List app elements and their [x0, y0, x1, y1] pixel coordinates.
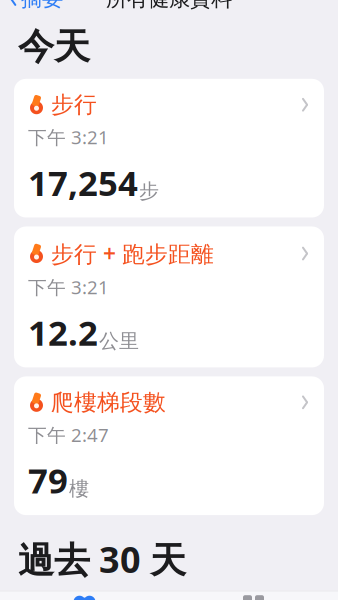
- staticText: 步: [139, 179, 159, 203]
- button[interactable]: 摘要: [0, 589, 169, 600]
- staticText: 步行: [51, 91, 97, 119]
- button[interactable]: 瀏覽: [169, 589, 338, 600]
- staticText: 公里: [99, 329, 139, 353]
- staticText: 樓: [69, 476, 89, 501]
- staticText: 12.2: [28, 309, 98, 355]
- staticText: 所有健康資料: [106, 0, 232, 12]
- staticText: 摘要: [21, 0, 63, 12]
- staticText: 步行 + 跑步距離: [51, 238, 214, 269]
- staticText: 下午 3:21: [28, 275, 109, 299]
- staticText: 下午 3:21: [28, 125, 109, 149]
- button[interactable]: 步行: [14, 79, 324, 217]
- staticText: 過去 30 天: [18, 535, 186, 583]
- button[interactable]: 爬樓梯段數: [14, 376, 324, 515]
- button[interactable]: 摘要: [0, 0, 71, 16]
- staticText: 79: [28, 457, 68, 503]
- staticText: 爬樓梯段數: [51, 388, 166, 416]
- staticText: 今天: [18, 25, 90, 69]
- button[interactable]: 步行 + 跑步距離: [14, 226, 324, 367]
- staticText: 下午 2:47: [28, 422, 109, 447]
- staticText: 17,254: [28, 159, 138, 205]
